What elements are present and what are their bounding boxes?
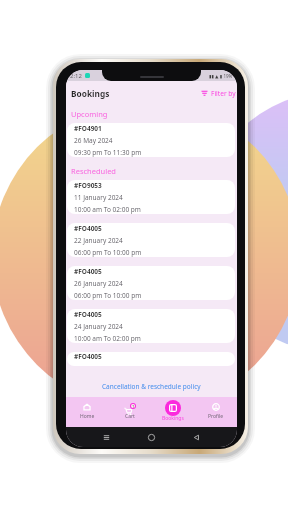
staticText: 09:30 pm To 11:30 pm [74, 148, 142, 157]
button[interactable]: #FO4005 [67, 223, 235, 257]
staticText: ▮▮ ▲ ▮ 19% [209, 73, 233, 79]
staticText: #FO9053 [74, 181, 102, 190]
staticText: 26 January 2024 [74, 279, 123, 288]
staticText: 06:00 pm To 10:00 pm [74, 248, 142, 257]
button[interactable]: Cancellation & reschedule policy [100, 380, 203, 393]
staticText: Cart [125, 413, 135, 420]
staticText: 10:00 am To 02:00 pm [74, 334, 141, 343]
button[interactable]: #FO4005 [67, 266, 235, 300]
button[interactable]: Recents [102, 433, 111, 442]
staticText: Filter by [211, 89, 236, 98]
staticText: 26 May 2024 [74, 136, 113, 145]
button[interactable]: #FO4005 [67, 352, 235, 366]
button[interactable]: Profile [194, 397, 237, 427]
staticText: #FO4005 [74, 352, 102, 361]
button[interactable]: #FO9053 [67, 180, 235, 214]
button[interactable]: #FO4901 [67, 123, 235, 157]
staticText: 10:00 am To 02:00 pm [74, 205, 141, 214]
staticText: #FO4005 [74, 267, 102, 276]
button[interactable]: Home [66, 397, 108, 427]
button[interactable]: Home [147, 433, 156, 442]
staticText: Rescheduled [71, 166, 116, 176]
staticText: #FO4901 [74, 124, 102, 133]
staticText: #FO4005 [74, 224, 102, 233]
staticText: Bookings [71, 88, 110, 99]
button[interactable]: Filter by [200, 87, 237, 100]
staticText: 22 January 2024 [74, 236, 123, 245]
button[interactable]: #FO4005 [67, 309, 235, 343]
staticText: #FO4005 [74, 310, 102, 319]
button[interactable]: 1 [108, 397, 151, 427]
staticText: 06:00 pm To 10:00 pm [74, 291, 142, 300]
button[interactable]: Back [192, 433, 201, 442]
staticText: Upcoming [71, 109, 108, 119]
staticText: Profile [208, 413, 224, 420]
staticText: 24 January 2024 [74, 322, 123, 331]
staticText: Home [80, 413, 95, 420]
staticText: 1 [132, 404, 135, 408]
button[interactable]: Bookings [151, 397, 194, 427]
staticText: 2:12 [70, 72, 82, 80]
staticText: Bookings [162, 415, 184, 422]
staticText: 11 January 2024 [74, 193, 123, 202]
